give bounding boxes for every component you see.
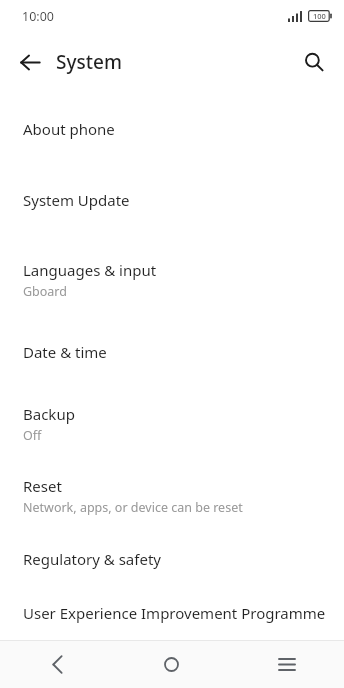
staticText: 100 bbox=[313, 11, 326, 21]
staticText: Off bbox=[23, 427, 42, 444]
button[interactable]: Back bbox=[8, 40, 52, 84]
button[interactable]: About phone bbox=[0, 102, 344, 156]
staticText: System Update bbox=[23, 190, 130, 210]
button[interactable]: Recent apps bbox=[229, 641, 344, 688]
button[interactable]: Reset bbox=[0, 460, 344, 531]
staticText: Languages & input bbox=[23, 260, 157, 280]
staticText: Regulatory & safety bbox=[23, 549, 161, 569]
button[interactable]: User Experience Improvement Programme bbox=[0, 586, 344, 640]
button[interactable]: Date & time bbox=[0, 316, 344, 388]
button[interactable]: Home bbox=[114, 641, 229, 688]
staticText: System bbox=[56, 49, 122, 75]
button[interactable]: Regulatory & safety bbox=[0, 531, 344, 586]
button[interactable]: Languages & input bbox=[0, 244, 344, 316]
staticText: User Experience Improvement Programme bbox=[23, 603, 326, 623]
staticText: 10:00 bbox=[22, 8, 54, 25]
staticText: Date & time bbox=[23, 342, 107, 362]
button[interactable]: System Update bbox=[0, 156, 344, 244]
staticText: Network, apps, or device can be reset bbox=[23, 499, 243, 516]
button[interactable]: Backup bbox=[0, 388, 344, 460]
staticText: Backup bbox=[23, 404, 75, 424]
button[interactable]: Search bbox=[292, 40, 336, 84]
staticText: Reset bbox=[23, 476, 62, 496]
staticText: Gboard bbox=[23, 283, 67, 300]
button[interactable]: Back bbox=[0, 641, 114, 688]
staticText: About phone bbox=[23, 119, 115, 139]
